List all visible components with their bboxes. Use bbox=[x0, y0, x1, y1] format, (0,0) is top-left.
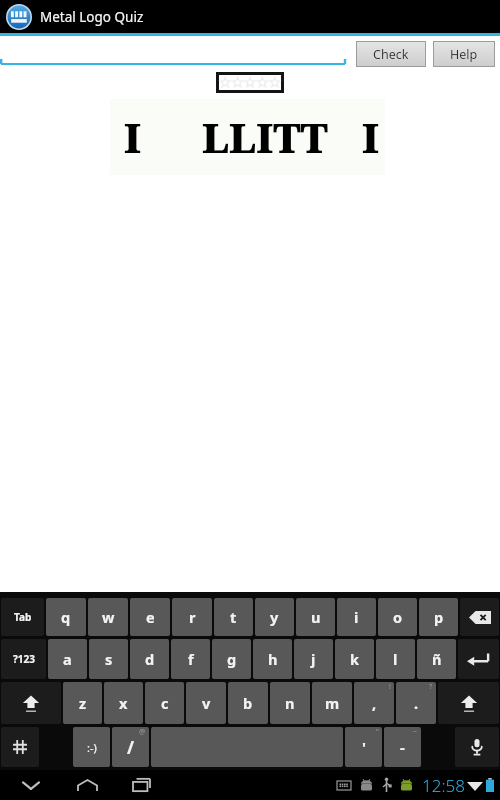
staticText: z bbox=[79, 693, 87, 713]
staticText: Metal Logo Quiz bbox=[40, 8, 144, 26]
staticText: t bbox=[230, 607, 237, 627]
button[interactable]: p bbox=[419, 598, 458, 636]
staticText: LLITT bbox=[202, 110, 328, 164]
button[interactable]: Help bbox=[434, 42, 494, 66]
staticText: v bbox=[202, 693, 211, 713]
button[interactable]: m bbox=[312, 682, 352, 724]
button[interactable]: Emoji bbox=[73, 727, 110, 767]
staticText: c bbox=[161, 693, 169, 713]
staticText: l bbox=[393, 649, 398, 669]
staticText: m bbox=[325, 693, 340, 713]
button[interactable]: h bbox=[253, 639, 292, 679]
staticText: a bbox=[63, 649, 72, 669]
button[interactable]: o bbox=[378, 598, 417, 636]
button[interactable]: Home bbox=[70, 771, 104, 799]
staticText: Check bbox=[373, 46, 409, 63]
button[interactable]: v bbox=[186, 682, 226, 724]
button[interactable]: Input method bbox=[1, 727, 39, 767]
staticText: r bbox=[189, 607, 196, 627]
button[interactable]: x bbox=[104, 682, 143, 724]
button[interactable]: w bbox=[88, 598, 128, 636]
button[interactable]: b bbox=[228, 682, 268, 724]
staticText: b bbox=[243, 693, 253, 713]
button[interactable]: l bbox=[376, 639, 415, 679]
staticText: g bbox=[227, 649, 237, 669]
button[interactable] bbox=[0, 37, 349, 67]
button[interactable]: f bbox=[171, 639, 210, 679]
staticText: i bbox=[354, 607, 359, 627]
button[interactable]: Slash bbox=[112, 727, 149, 767]
staticText: ~ bbox=[413, 727, 418, 737]
staticText: e bbox=[146, 607, 155, 627]
button[interactable]: r bbox=[172, 598, 212, 636]
staticText: 12:58 bbox=[422, 774, 465, 797]
button[interactable]: Shift bbox=[438, 682, 499, 724]
button[interactable]: Shift bbox=[1, 682, 61, 724]
button[interactable]: Hide keyboard bbox=[14, 771, 48, 799]
staticText: f bbox=[188, 649, 194, 669]
button[interactable]: q bbox=[46, 598, 86, 636]
staticText: , bbox=[372, 693, 377, 713]
staticText: . bbox=[414, 693, 419, 713]
button[interactable]: z bbox=[63, 682, 102, 724]
staticText: :-) bbox=[87, 740, 97, 755]
staticText: I bbox=[124, 110, 142, 164]
button[interactable]: e bbox=[130, 598, 170, 636]
button[interactable]: i bbox=[337, 598, 376, 636]
staticText: k bbox=[350, 649, 359, 669]
button[interactable]: I bbox=[110, 99, 385, 175]
staticText: q bbox=[61, 607, 71, 627]
button[interactable] bbox=[219, 75, 281, 90]
button[interactable]: t bbox=[214, 598, 253, 636]
button[interactable]: ? bbox=[396, 682, 436, 724]
button[interactable]: n bbox=[270, 682, 310, 724]
button[interactable]: a bbox=[48, 639, 87, 679]
button[interactable]: y bbox=[255, 598, 294, 636]
button[interactable]: j bbox=[294, 639, 333, 679]
button[interactable]: ñ bbox=[417, 639, 456, 679]
staticText: h bbox=[268, 649, 278, 669]
button[interactable]: k bbox=[335, 639, 374, 679]
staticText: u bbox=[311, 607, 321, 627]
staticText: s bbox=[105, 649, 113, 669]
staticText: ! bbox=[389, 682, 391, 692]
staticText: / bbox=[127, 736, 135, 759]
staticText: " bbox=[376, 727, 379, 737]
staticText: x bbox=[119, 693, 128, 713]
staticText: I bbox=[362, 110, 380, 164]
button[interactable]: Apostrophe bbox=[345, 727, 382, 767]
staticText: ? bbox=[429, 682, 433, 692]
staticText: @ bbox=[139, 727, 146, 737]
button[interactable]: Hyphen bbox=[384, 727, 421, 767]
staticText: j bbox=[311, 649, 316, 669]
button[interactable]: d bbox=[130, 639, 169, 679]
button[interactable]: ! bbox=[354, 682, 394, 724]
staticText: y bbox=[270, 607, 279, 627]
button[interactable]: ?123 bbox=[1, 639, 46, 679]
staticText: ' bbox=[362, 737, 366, 757]
button[interactable]: u bbox=[296, 598, 335, 636]
button[interactable]: Recent apps bbox=[124, 771, 158, 799]
staticText: d bbox=[145, 649, 155, 669]
staticText: Tab bbox=[14, 610, 32, 624]
staticText: ñ bbox=[432, 649, 442, 669]
staticText: - bbox=[400, 737, 405, 757]
staticText: n bbox=[285, 693, 295, 713]
button[interactable]: g bbox=[212, 639, 251, 679]
button[interactable]: s bbox=[89, 639, 128, 679]
staticText: o bbox=[393, 607, 403, 627]
staticText: ?123 bbox=[13, 652, 35, 666]
button[interactable]: Voice input bbox=[455, 727, 499, 767]
button[interactable]: Backspace bbox=[460, 598, 499, 636]
button[interactable]: Check bbox=[357, 42, 425, 66]
button[interactable]: c bbox=[145, 682, 184, 724]
button[interactable]: Enter bbox=[458, 639, 499, 679]
staticText: Help bbox=[450, 46, 478, 63]
staticText: p bbox=[434, 607, 444, 627]
staticText: w bbox=[102, 607, 115, 627]
button[interactable]: Tab bbox=[1, 598, 44, 636]
